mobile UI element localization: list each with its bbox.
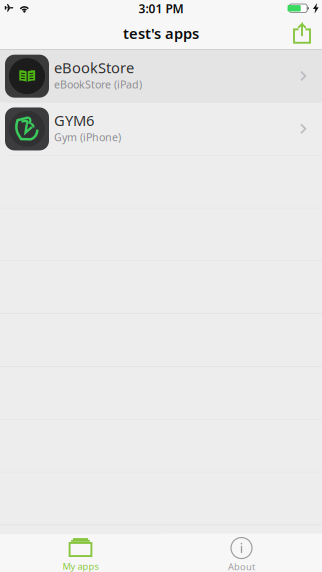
button[interactable]: About bbox=[161, 534, 322, 572]
staticText: About bbox=[228, 561, 255, 572]
button[interactable]: Share bbox=[282, 20, 322, 49]
button[interactable]: GYM6 bbox=[0, 103, 322, 156]
staticText: eBookStore (iPad) bbox=[54, 77, 142, 91]
staticText: eBookStore bbox=[54, 58, 134, 77]
staticText: My apps bbox=[62, 560, 98, 572]
staticText: Gym (iPhone) bbox=[54, 130, 121, 144]
staticText: GYM6 bbox=[54, 111, 94, 130]
staticText: 3:01 PM bbox=[138, 0, 183, 16]
staticText: test's apps bbox=[123, 23, 199, 43]
button[interactable]: My apps bbox=[0, 534, 161, 572]
button[interactable]: eBookStore bbox=[0, 50, 322, 103]
